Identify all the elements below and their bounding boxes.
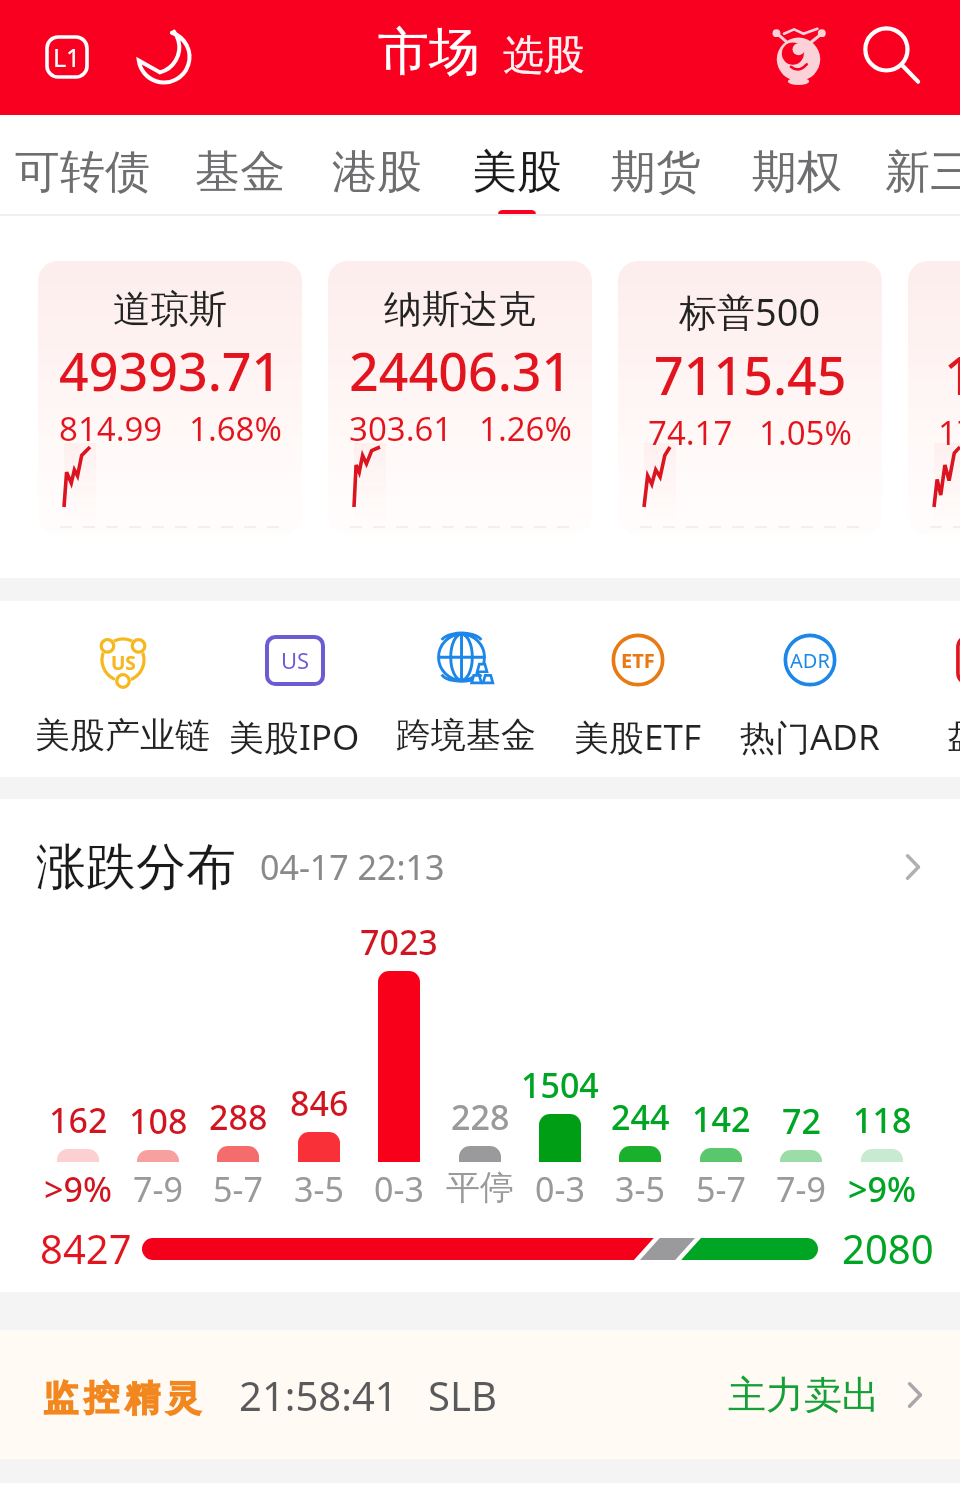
button[interactable]: 港股	[291, 115, 463, 225]
staticText: 108	[129, 1098, 188, 1140]
button[interactable]: ETF	[538, 601, 738, 777]
staticText: 1.68%	[189, 406, 282, 451]
button[interactable]: 基金	[154, 115, 326, 225]
staticText: 24406.31	[349, 335, 572, 406]
staticText: 跨境基金	[396, 713, 536, 757]
staticText: 7-9	[133, 1166, 183, 1208]
button[interactable]: Night mode	[130, 23, 197, 90]
staticText: >9%	[848, 1166, 916, 1208]
staticText: 市场	[378, 20, 480, 84]
staticText: 288	[209, 1094, 268, 1136]
button[interactable]: 盘前	[882, 601, 960, 777]
staticText: SLB	[428, 1368, 497, 1422]
staticText: 1504	[521, 1062, 599, 1104]
staticText: ADR	[790, 647, 830, 674]
staticText: 美股	[472, 144, 562, 201]
staticText: 新三	[885, 144, 960, 201]
button[interactable]: 标普500	[618, 261, 882, 535]
staticText: 3-5	[294, 1166, 344, 1208]
staticText: >9%	[44, 1166, 112, 1208]
staticText: 道琼斯	[113, 285, 227, 333]
button[interactable]: US	[22, 601, 222, 777]
staticText: 142	[692, 1096, 751, 1138]
staticText: 美股ETF	[574, 713, 702, 761]
button[interactable]: 5-7 142	[681, 957, 761, 1209]
button[interactable]: 涨跌分布	[0, 821, 960, 913]
staticText: 04-17 22:13	[260, 844, 445, 890]
staticText: 选股	[503, 30, 585, 82]
staticText: 7023	[360, 919, 438, 961]
staticText: 8427	[40, 1221, 132, 1269]
staticText: 162	[49, 1097, 108, 1139]
staticText: 49393.71	[59, 335, 282, 406]
button[interactable]: 5-7 288	[198, 957, 278, 1209]
button[interactable]: L1 quote level	[33, 23, 100, 90]
button[interactable]: Assistant robot	[762, 19, 834, 91]
staticText: 平停	[446, 1166, 514, 1208]
staticText: 846	[290, 1080, 349, 1122]
staticText: 74.17	[648, 410, 733, 455]
staticText: 21:58:41	[239, 1368, 398, 1422]
button[interactable]: 期权	[711, 115, 883, 225]
button[interactable]: 平停 228	[440, 957, 520, 1209]
button[interactable]: 3-5 846	[279, 957, 359, 1209]
staticText: 228	[451, 1094, 510, 1136]
staticText: 7-9	[776, 1166, 826, 1208]
staticText: 热门ADR	[740, 713, 880, 761]
button[interactable]: ADR	[710, 601, 910, 777]
button[interactable]: 3-5 244	[600, 957, 680, 1209]
staticText: 美股IPO	[229, 713, 360, 761]
staticText: US	[111, 650, 136, 676]
staticText: 72	[782, 1098, 821, 1140]
button[interactable]: 美股	[431, 115, 603, 225]
staticText: 118	[853, 1097, 912, 1139]
staticText: 3-5	[615, 1166, 665, 1208]
staticText: 可转债	[15, 144, 150, 201]
staticText: 0-3	[374, 1166, 424, 1208]
staticText: 标普500	[679, 285, 821, 337]
staticText: US	[281, 645, 310, 675]
staticText: L1	[53, 40, 81, 74]
button[interactable]: 7-9 72	[761, 957, 841, 1209]
staticText: 244	[611, 1094, 670, 1136]
staticText: 期货	[611, 144, 701, 201]
button[interactable]: >9% 118	[842, 957, 922, 1209]
staticText: 主力卖出	[728, 1371, 880, 1419]
staticText: 5-7	[696, 1166, 746, 1208]
button[interactable]: Search	[856, 19, 928, 91]
staticText: 监控精灵	[40, 1376, 204, 1420]
staticText: 基金	[195, 144, 285, 201]
button[interactable]: 可转债	[0, 115, 168, 225]
staticText: 涨跌分布	[36, 836, 236, 899]
staticText: 1.05%	[759, 410, 852, 455]
staticText: 2080	[842, 1221, 934, 1269]
button[interactable]: 市场	[378, 19, 480, 85]
button[interactable]: 0-3 7023	[359, 957, 439, 1209]
staticText: 港股	[332, 144, 422, 201]
staticText: 1.26%	[479, 406, 572, 451]
button[interactable]: 纳斯达克	[328, 261, 592, 535]
staticText: 1512.33	[944, 339, 960, 410]
button[interactable]: 道琼斯	[38, 261, 302, 535]
staticText: 303.61	[349, 406, 453, 451]
button[interactable]: 选股	[503, 23, 585, 89]
button[interactable]: 0-3 1504	[520, 957, 600, 1209]
staticText: 7115.45	[654, 339, 847, 410]
button[interactable]: >9% 162	[38, 957, 118, 1209]
button[interactable]: 7-9 108	[118, 957, 198, 1209]
button[interactable]: 期货	[570, 115, 742, 225]
staticText: 5-7	[213, 1166, 263, 1208]
staticText: 纳斯达克	[384, 285, 536, 333]
staticText: 17.05	[938, 410, 960, 455]
staticText: 0-3	[535, 1166, 585, 1208]
staticText: 美股产业链	[35, 713, 210, 757]
staticText: ETF	[621, 647, 655, 674]
button[interactable]: 监控精灵	[0, 1330, 960, 1459]
button[interactable]: 跨境基金	[366, 601, 566, 777]
button[interactable]: 罗素2000	[908, 261, 960, 535]
button[interactable]: US	[194, 601, 394, 777]
button[interactable]: 新三	[844, 115, 960, 225]
staticText: 期权	[752, 144, 842, 201]
staticText: 814.99	[59, 406, 163, 451]
